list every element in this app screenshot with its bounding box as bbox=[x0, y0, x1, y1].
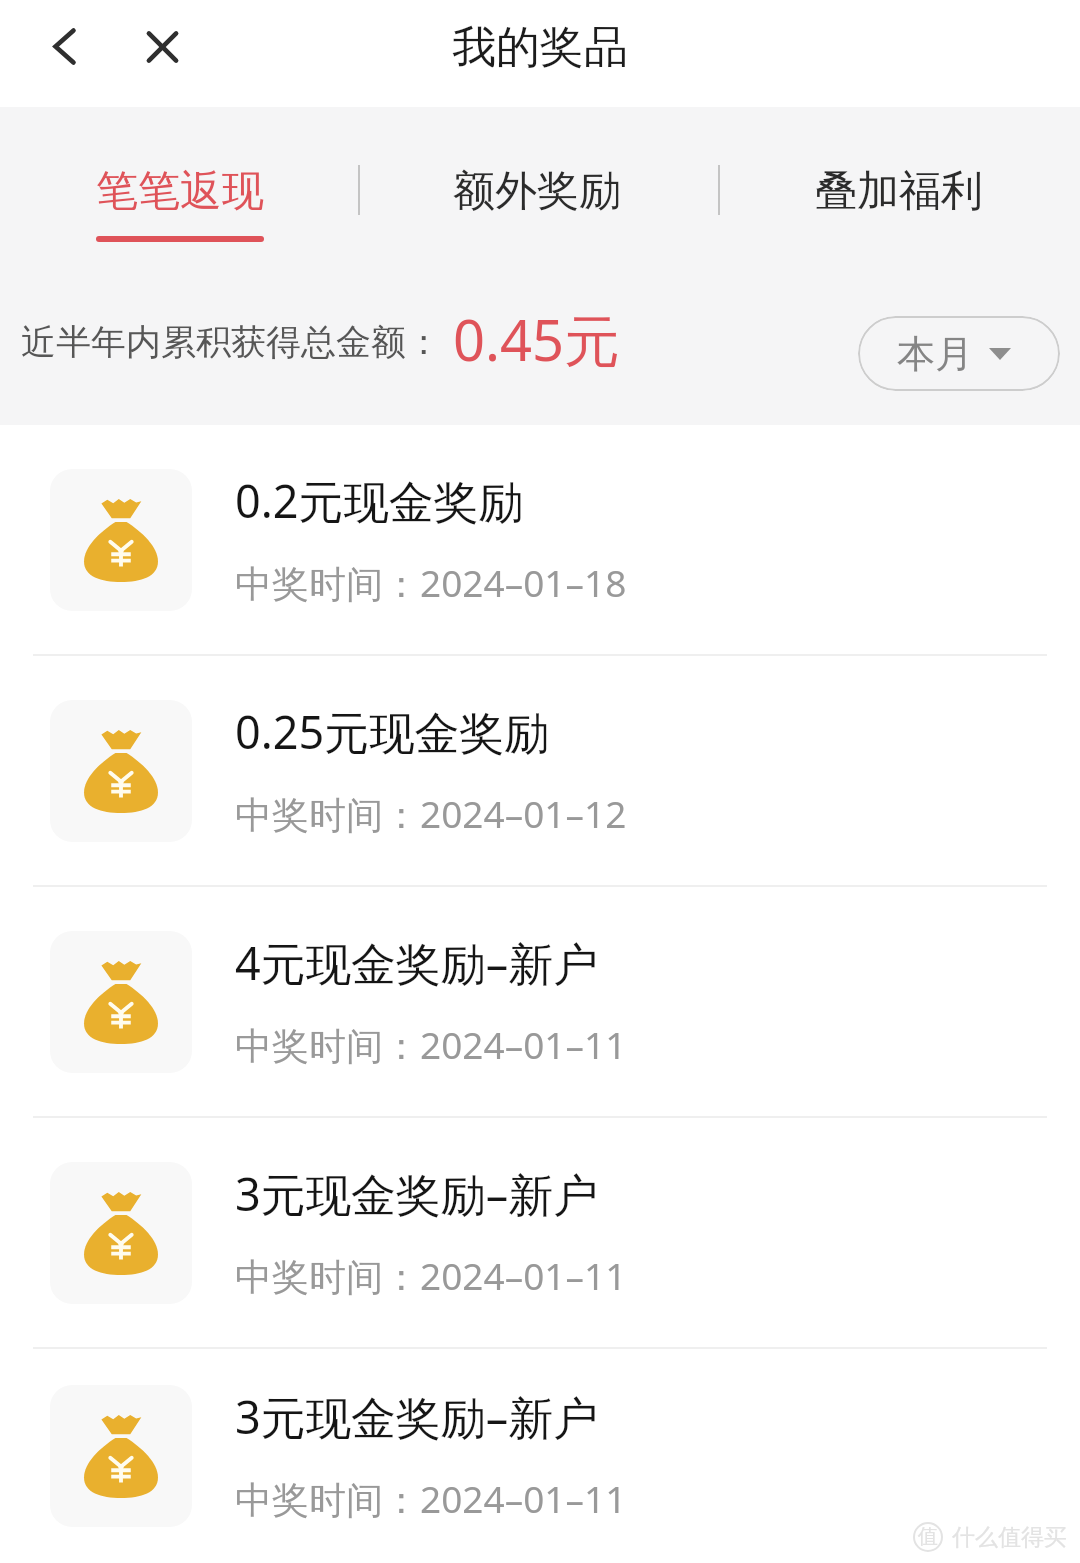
staticText: 叠加福利 bbox=[815, 165, 983, 218]
staticText: 中奖时间：2024–01–11 bbox=[235, 1250, 627, 1301]
button[interactable]: 3元现金奖励–新户 bbox=[0, 1118, 1080, 1347]
staticText: 3元现金奖励–新户 bbox=[235, 1386, 599, 1447]
button[interactable]: 额外奖励 bbox=[427, 151, 647, 232]
button[interactable]: 0.2元现金奖励 bbox=[0, 425, 1080, 654]
staticText: 什么值得买 bbox=[952, 1523, 1067, 1552]
staticText: 中奖时间：2024–01–11 bbox=[235, 1019, 627, 1070]
staticText: 0.2元现金奖励 bbox=[235, 470, 524, 531]
staticText: 值 bbox=[918, 1524, 938, 1549]
button[interactable]: 笔笔返现 bbox=[70, 151, 290, 256]
staticText: 4元现金奖励–新户 bbox=[235, 932, 599, 993]
button[interactable]: Back bbox=[28, 12, 100, 84]
button[interactable]: 本月 bbox=[858, 316, 1060, 391]
staticText: 额外奖励 bbox=[453, 165, 621, 218]
staticText: 我的奖品 bbox=[452, 20, 628, 75]
staticText: 中奖时间：2024–01–11 bbox=[235, 1473, 627, 1524]
button[interactable]: 叠加福利 bbox=[789, 151, 1009, 232]
staticText: 笔笔返现 bbox=[96, 165, 264, 218]
button[interactable]: Close bbox=[126, 12, 198, 84]
staticText: 0.25元现金奖励 bbox=[235, 701, 550, 762]
button[interactable]: 3元现金奖励–新户 bbox=[0, 1349, 1080, 1563]
staticText: 中奖时间：2024–01–12 bbox=[235, 788, 627, 839]
button[interactable]: 4元现金奖励–新户 bbox=[0, 887, 1080, 1116]
staticText: 中奖时间：2024–01–18 bbox=[235, 557, 627, 608]
staticText: 0.45元 bbox=[453, 301, 621, 377]
staticText: 近半年内累积获得总金额： bbox=[21, 320, 441, 364]
staticText: 3元现金奖励–新户 bbox=[235, 1163, 599, 1224]
staticText: 本月 bbox=[897, 330, 973, 378]
button[interactable]: 0.25元现金奖励 bbox=[0, 656, 1080, 885]
